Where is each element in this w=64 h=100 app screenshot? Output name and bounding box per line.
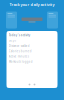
staticText: Steps — [9, 39, 16, 42]
staticText: Today's activity — [9, 33, 30, 37]
staticText: Workouts logged — [9, 60, 33, 63]
staticText: Calories burned — [9, 49, 32, 53]
staticText: Active minutes — [9, 55, 29, 58]
staticText: Track your daily activity — [9, 2, 54, 7]
staticText: Distance walked — [9, 44, 30, 48]
